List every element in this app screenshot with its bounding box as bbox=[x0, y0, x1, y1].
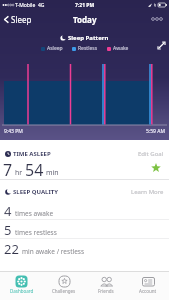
staticText: 22 bbox=[4, 240, 19, 258]
staticText: 5 bbox=[4, 221, 12, 239]
staticText: Restless bbox=[78, 45, 98, 52]
staticText: hr bbox=[15, 168, 23, 178]
button[interactable]: Account bbox=[127, 271, 169, 300]
staticText: 54 bbox=[25, 159, 44, 181]
staticText: Learn More bbox=[131, 188, 164, 196]
staticText: times restless bbox=[15, 228, 57, 237]
staticText: min awake / restless bbox=[22, 247, 85, 256]
staticText: times awake bbox=[15, 209, 54, 218]
button[interactable]: 5 bbox=[4, 221, 57, 239]
staticText: 7:21 PM bbox=[75, 2, 95, 9]
staticText: Dashboard bbox=[10, 288, 34, 294]
staticText: ♮ bbox=[154, 2, 156, 8]
staticText: 4G bbox=[38, 2, 45, 9]
button[interactable] bbox=[151, 17, 163, 21]
button[interactable]: 22 bbox=[4, 240, 85, 258]
staticText: Asleep bbox=[47, 45, 63, 52]
button[interactable]: Sleep bbox=[3, 14, 32, 25]
button[interactable]: Challenges bbox=[43, 271, 85, 300]
staticText: Today bbox=[73, 14, 97, 25]
staticText: TIME ASLEEP bbox=[13, 150, 51, 158]
staticText: 7 bbox=[3, 159, 13, 181]
button[interactable]: 4 bbox=[4, 202, 54, 220]
staticText: Friends bbox=[98, 288, 114, 294]
staticText: Account bbox=[139, 288, 157, 294]
staticText: Awake bbox=[113, 45, 129, 52]
staticText: Sleep bbox=[11, 14, 32, 25]
staticText: T-Mobile bbox=[15, 2, 36, 9]
button[interactable]: SLEEP QUALITY bbox=[5, 188, 164, 196]
staticText: Edit Goal bbox=[138, 150, 164, 158]
staticText: 4 bbox=[4, 202, 12, 220]
button[interactable]: Dashboard bbox=[0, 271, 43, 300]
button[interactable] bbox=[157, 41, 166, 50]
staticText: 9:43 PM bbox=[4, 128, 23, 135]
button[interactable]: Friends bbox=[85, 271, 127, 300]
staticText: SLEEP QUALITY bbox=[13, 188, 58, 196]
staticText: Sleep Pattern bbox=[68, 34, 109, 42]
staticText: min bbox=[46, 168, 59, 178]
button[interactable]: TIME ASLEEP bbox=[5, 150, 164, 158]
staticText: 5:59 AM bbox=[146, 128, 165, 135]
staticText: Challenges bbox=[52, 288, 76, 294]
